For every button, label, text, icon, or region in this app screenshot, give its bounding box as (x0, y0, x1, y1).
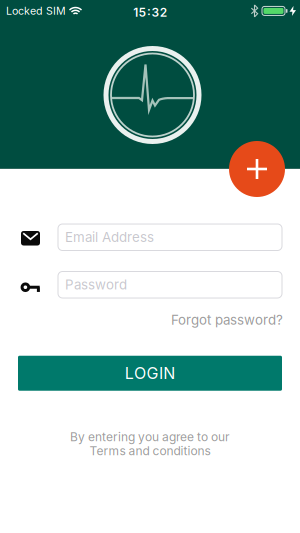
button[interactable]: Add (229, 141, 285, 197)
button[interactable]: Email Address (58, 224, 282, 250)
button[interactable]: Password (58, 271, 282, 298)
staticText: Email Address (65, 229, 154, 245)
button[interactable]: LOGIN (18, 356, 282, 391)
staticText: LOGIN (125, 364, 175, 383)
staticText: Password (65, 277, 127, 293)
button[interactable]: Forgot password? (171, 312, 283, 328)
staticText: Forgot password? (171, 312, 283, 328)
staticText: Locked SIM (6, 5, 66, 17)
staticText: Terms and conditions (89, 444, 210, 458)
staticText: By entering you agree to our (70, 430, 230, 444)
staticText: 15:32 (133, 5, 167, 20)
